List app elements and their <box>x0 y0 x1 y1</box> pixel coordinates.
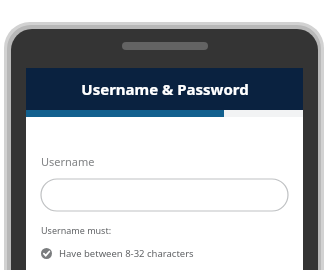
staticText: Have between 8-32 characters <box>59 247 194 260</box>
staticText: Username must: <box>41 224 112 236</box>
other: Requirement met <box>41 248 52 259</box>
button[interactable]: Username & Password <box>26 68 303 110</box>
button[interactable] <box>41 179 288 211</box>
button[interactable]: Requirement met <box>41 247 194 260</box>
staticText: Username <box>41 154 95 169</box>
staticText: Username & Password <box>81 79 249 99</box>
